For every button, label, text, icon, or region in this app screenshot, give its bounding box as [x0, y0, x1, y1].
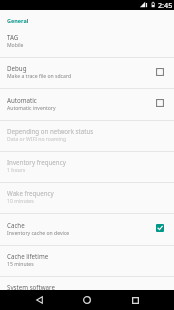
staticText: 15 minutes	[7, 261, 34, 268]
button[interactable]: Toggle	[154, 97, 165, 108]
staticText: System software	[7, 283, 55, 291]
staticText: Automatic	[7, 96, 37, 104]
staticText: 10 minutes	[7, 198, 34, 205]
button[interactable]: Toggle	[154, 66, 165, 77]
button[interactable]: System software	[0, 277, 174, 307]
button[interactable]: TAG	[0, 27, 174, 57]
staticText: Inventory cache on device	[7, 230, 70, 237]
staticText: Mobile	[7, 42, 24, 49]
button[interactable]: Cache	[0, 214, 174, 245]
button[interactable]: Wake frequency	[0, 183, 174, 213]
staticText: Depending on network status	[7, 127, 94, 135]
button[interactable]: Toggle	[154, 222, 165, 233]
button[interactable]: Automatic	[0, 89, 174, 120]
staticText: Inventory frequency	[7, 158, 66, 166]
staticText: Automatic inventory	[7, 105, 56, 112]
staticText: Debug	[7, 64, 27, 72]
button[interactable]: Depending on network status	[0, 121, 174, 151]
staticText: Wake frequency	[7, 189, 54, 197]
button[interactable]: Debug	[0, 58, 174, 88]
button[interactable]: Home	[74, 290, 100, 310]
button[interactable]: Cache lifetime	[0, 246, 174, 276]
staticText: TAG	[7, 33, 19, 41]
staticText: Cache lifetime	[7, 252, 49, 260]
staticText: Make a trace file on sdcard	[7, 73, 72, 80]
staticText: 2:45	[158, 0, 173, 10]
staticText: Data or WIFI no roaming	[7, 136, 67, 143]
staticText: 1 hours	[7, 167, 26, 174]
staticText: Firmware and drivers	[7, 292, 58, 299]
staticText: Cache	[7, 221, 25, 229]
button[interactable]: Inventory frequency	[0, 152, 174, 182]
button[interactable]: Recents	[122, 290, 148, 310]
staticText: General	[7, 17, 29, 24]
button[interactable]: Back	[26, 290, 52, 310]
